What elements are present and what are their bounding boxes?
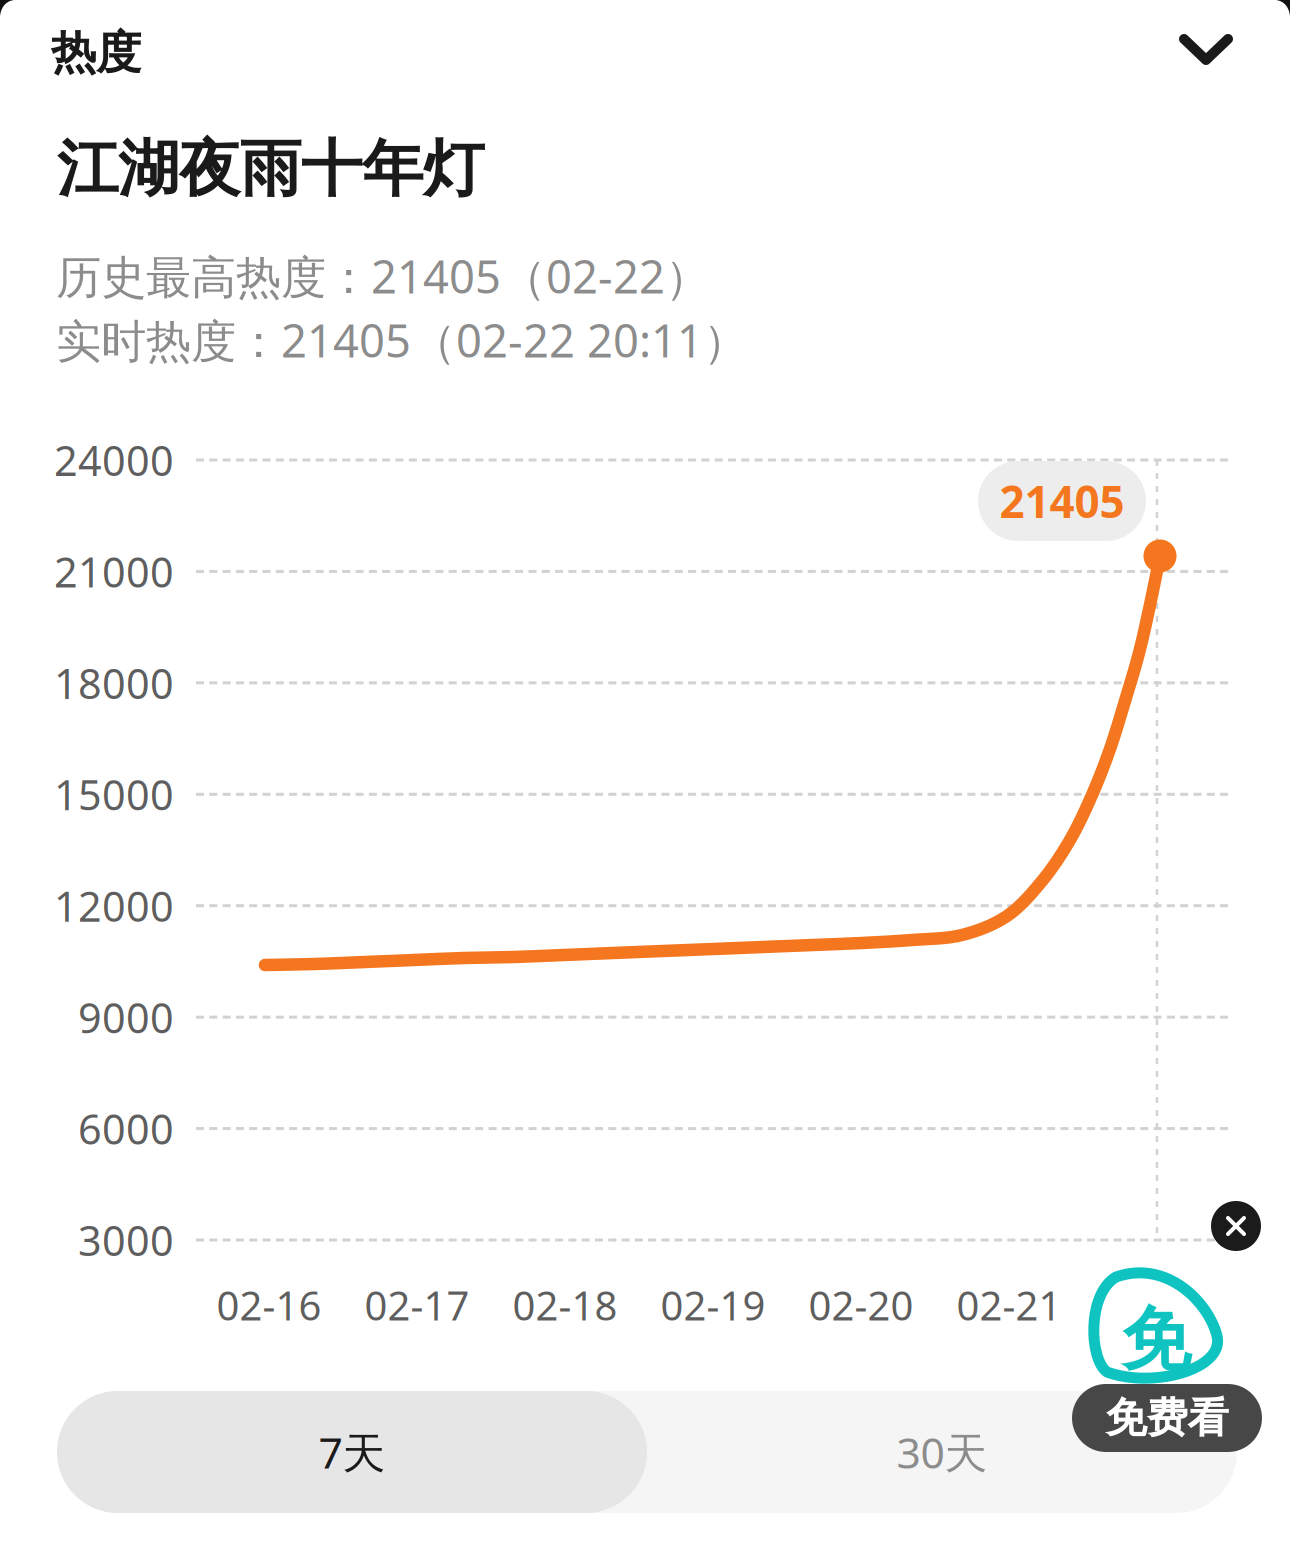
staticText: 24000 [54, 433, 174, 487]
staticText: 7天 [318, 1424, 385, 1480]
staticText: 21405 [999, 472, 1124, 530]
staticText: 免 [1121, 1297, 1190, 1383]
staticText: 18000 [54, 655, 174, 710]
button[interactable]: 免费看 [1072, 1384, 1262, 1452]
staticText: 02-20 [808, 1278, 913, 1331]
staticText: 6000 [78, 1101, 174, 1156]
staticText: 实时热度：21405（02-22 20:11） [56, 310, 748, 370]
staticText: 15000 [54, 767, 174, 822]
staticText: 免费看 [1105, 1393, 1228, 1443]
staticText: 30天 [896, 1424, 987, 1480]
staticText: 02-21 [956, 1278, 1061, 1331]
button[interactable]: 30天 [647, 1391, 1237, 1513]
staticText: 9000 [78, 990, 174, 1045]
button[interactable]: Close ad [1205, 1195, 1267, 1257]
button[interactable]: Watch free [1083, 1261, 1253, 1391]
staticText: 江湖夜雨十年灯 [57, 131, 484, 207]
staticText: 02-16 [216, 1278, 321, 1331]
staticText: 21000 [54, 544, 174, 599]
staticText: 02-19 [660, 1278, 765, 1331]
staticText: 02-17 [364, 1278, 469, 1331]
staticText: 历史最高热度：21405（02-22） [56, 246, 710, 306]
button[interactable]: 7天 [57, 1391, 647, 1513]
staticText: 3000 [78, 1213, 174, 1267]
staticText: 02-18 [512, 1278, 617, 1331]
staticText: 热度 [51, 25, 141, 81]
staticText: 02-22 [1104, 1278, 1209, 1331]
staticText: 12000 [54, 878, 174, 933]
button[interactable]: Collapse [1157, 12, 1255, 88]
